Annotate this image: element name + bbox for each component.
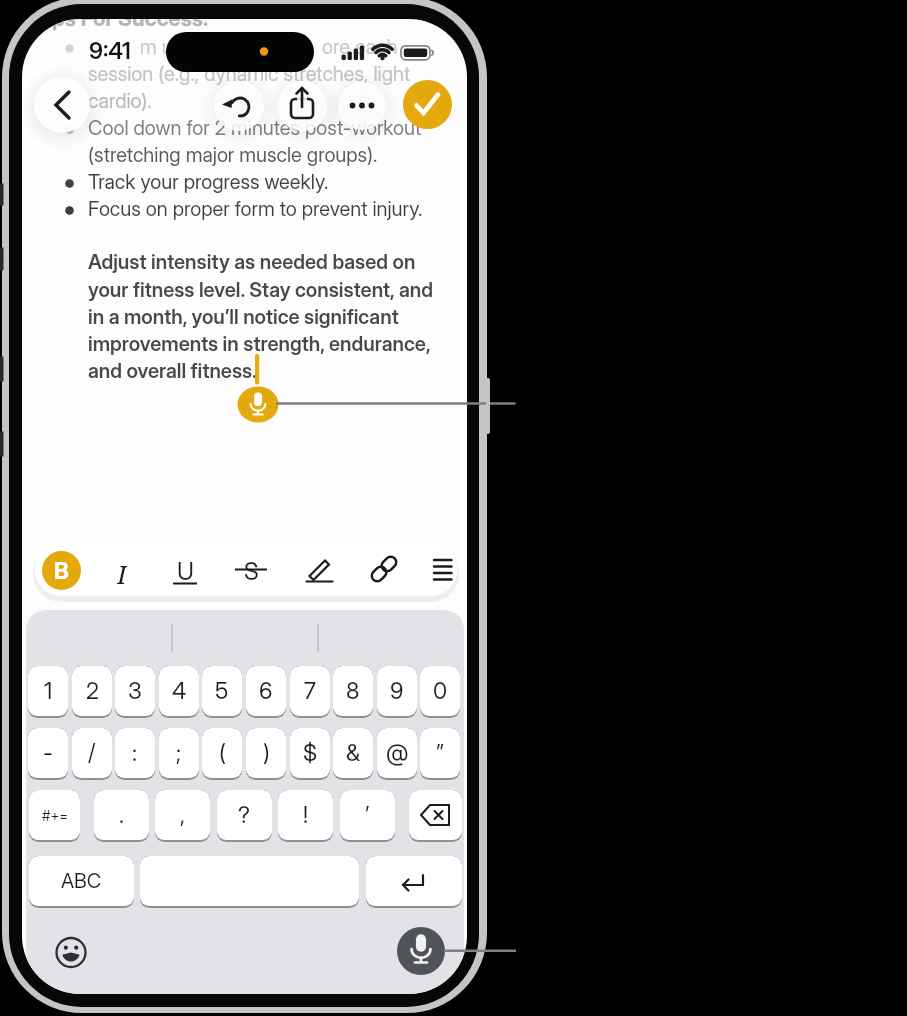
button[interactable]: 9 [377, 666, 417, 718]
button[interactable] [366, 856, 462, 908]
staticText: ” [436, 739, 444, 767]
staticText: ps For Success: [52, 19, 209, 31]
staticText: 1 [44, 677, 53, 705]
button[interactable] [34, 77, 90, 133]
staticText: , [180, 801, 186, 829]
staticText: . [119, 801, 125, 829]
button[interactable] [403, 80, 452, 129]
button[interactable] [300, 552, 338, 590]
staticText: 9:41 [89, 37, 131, 63]
staticText: 5 [215, 677, 229, 705]
staticText: / [88, 739, 96, 767]
staticText: (stretching major muscle groups). [88, 143, 378, 167]
button[interactable]: . [94, 790, 149, 842]
staticText: I [117, 556, 127, 586]
staticText: $ [303, 739, 318, 767]
staticText: Adjust intensity as needed based on your… [88, 250, 433, 382]
button[interactable] [214, 81, 264, 131]
button[interactable]: S [236, 556, 266, 586]
staticText: & [346, 739, 360, 767]
button[interactable]: I [109, 556, 135, 586]
staticText: 3 [128, 677, 142, 705]
staticText: 4 [172, 677, 187, 705]
staticText: ore each [322, 35, 398, 59]
staticText: 2 [86, 677, 99, 705]
staticText: ? [238, 801, 251, 829]
staticText: ’ [365, 801, 370, 829]
button[interactable] [277, 81, 327, 131]
button[interactable] [50, 931, 92, 973]
button[interactable]: 3 [115, 666, 155, 718]
staticText: #+= [42, 807, 68, 824]
staticText: 7 [304, 677, 316, 705]
staticText: @ [386, 739, 409, 767]
button[interactable]: 1 [28, 666, 68, 718]
button[interactable]: 7 [290, 666, 330, 718]
staticText: Focus on proper form to prevent injury. [88, 197, 423, 221]
staticText: U [177, 557, 194, 586]
staticText: 0 [433, 677, 448, 705]
button[interactable]: , [155, 790, 210, 842]
button[interactable] [338, 82, 386, 130]
button[interactable]: ) [246, 728, 286, 780]
staticText: B [54, 557, 69, 585]
button[interactable]: 6 [246, 666, 286, 718]
button[interactable] [397, 927, 445, 975]
staticText: - [43, 739, 53, 767]
staticText: 9 [390, 677, 404, 705]
button[interactable]: ? [217, 790, 272, 842]
button[interactable]: 0 [420, 666, 460, 718]
staticText: 6 [259, 677, 273, 705]
button[interactable]: ’ [340, 790, 395, 842]
button[interactable]: - [28, 728, 68, 780]
button[interactable] [426, 552, 460, 590]
button[interactable]: @ [377, 728, 417, 780]
staticText: Cool down for 2 minutes post-workout [88, 116, 422, 140]
staticText: 8 [346, 677, 360, 705]
button[interactable]: 2 [72, 666, 112, 718]
button[interactable]: ( [202, 728, 242, 780]
staticText: ) [263, 739, 270, 767]
staticText: : [132, 739, 138, 767]
button[interactable]: U [170, 556, 200, 586]
staticText: session (e.g., dynamic stretches, light [88, 62, 411, 86]
staticText: ! [303, 801, 309, 829]
button[interactable]: 8 [333, 666, 373, 718]
button[interactable]: ABC [29, 856, 134, 908]
button[interactable]: $ [290, 728, 330, 780]
staticText: ABC [61, 869, 102, 893]
button[interactable] [140, 856, 359, 908]
staticText: S [244, 557, 259, 586]
staticText: cardio). [88, 89, 152, 113]
button[interactable]: & [333, 728, 373, 780]
button[interactable] [409, 790, 462, 842]
button[interactable]: 5 [202, 666, 242, 718]
button[interactable] [365, 552, 403, 590]
button[interactable]: #+= [29, 790, 80, 842]
staticText: ; [176, 739, 182, 767]
button[interactable]: : [115, 728, 155, 780]
staticText: ( [219, 739, 226, 767]
button[interactable]: ; [159, 728, 199, 780]
button[interactable]: 4 [159, 666, 199, 718]
button[interactable]: / [72, 728, 112, 780]
staticText: m up [140, 35, 185, 59]
button[interactable]: ” [420, 728, 460, 780]
staticText: Track your progress weekly. [88, 170, 329, 194]
button[interactable]: B [42, 551, 81, 590]
button[interactable]: ! [278, 790, 333, 842]
